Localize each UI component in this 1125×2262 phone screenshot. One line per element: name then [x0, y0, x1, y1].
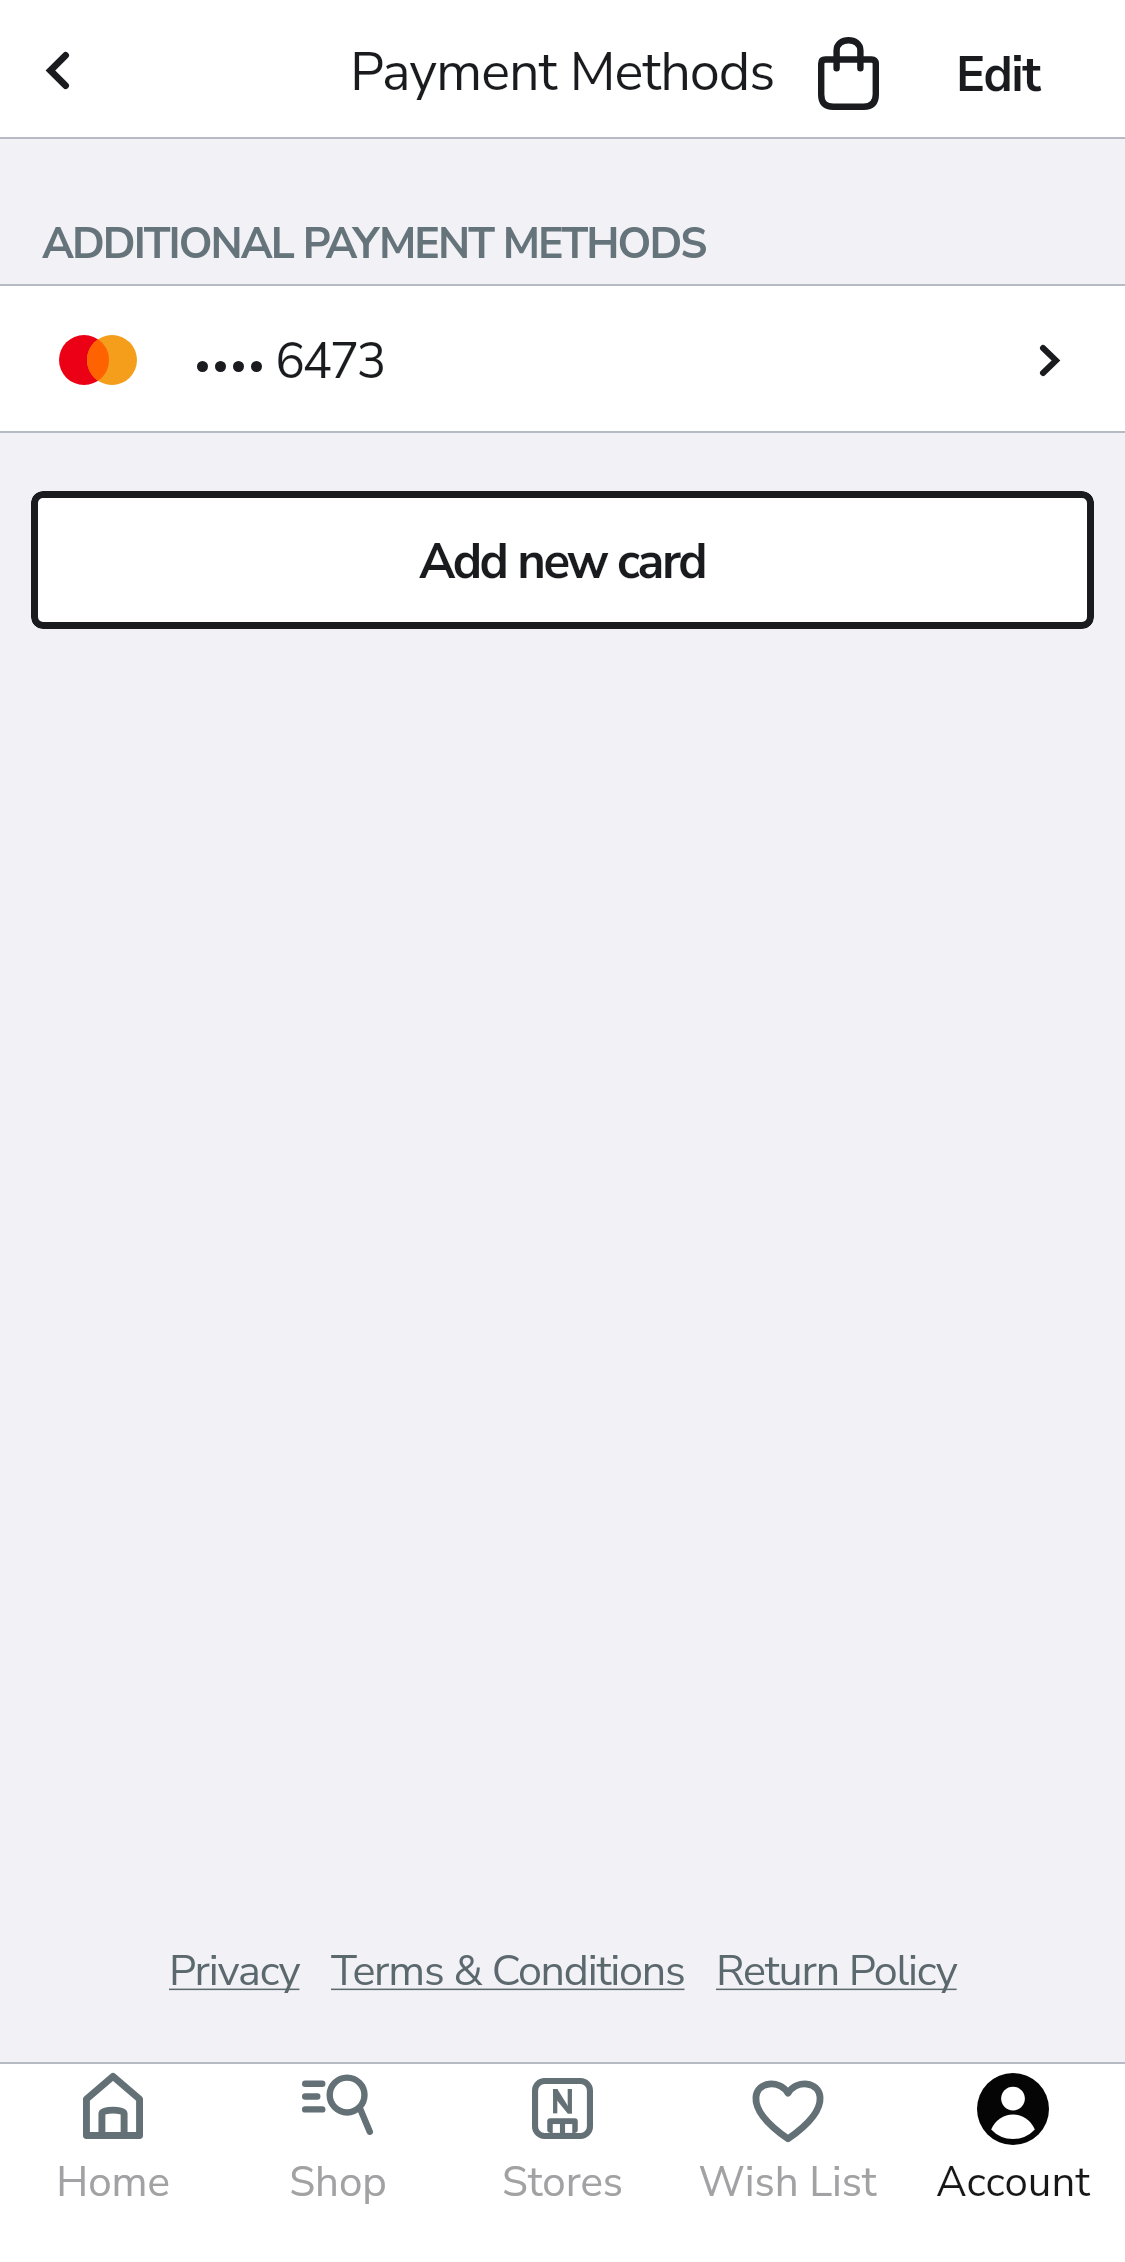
staticText: Home: [56, 2154, 170, 2211]
staticText: Terms & Conditions: [331, 1942, 685, 2001]
button[interactable]: Wish List: [675, 2064, 900, 2262]
button[interactable]: 6473: [0, 286, 1125, 433]
button[interactable]: Shop: [225, 2064, 450, 2262]
staticText: Payment Methods: [350, 35, 775, 109]
button[interactable]: Stores: [450, 2064, 675, 2262]
button[interactable]: Terms & Conditions: [331, 1942, 685, 2001]
staticText: Add new card: [419, 528, 706, 595]
button[interactable]: Privacy: [169, 1942, 300, 2001]
staticText: ADDITIONAL PAYMENT METHODS: [42, 215, 706, 274]
staticText: Wish List: [698, 2154, 877, 2211]
staticText: Return Policy: [716, 1942, 957, 2001]
button[interactable]: Return Policy: [716, 1942, 957, 2001]
staticText: Account: [936, 2154, 1090, 2211]
staticText: Stores: [502, 2154, 623, 2211]
button[interactable]: Edit: [956, 41, 1040, 108]
button[interactable]: Shopping bag: [805, 27, 891, 113]
staticText: Privacy: [169, 1942, 300, 2001]
staticText: 6473: [275, 327, 384, 395]
staticText: Shop: [289, 2154, 387, 2211]
button[interactable]: Home: [0, 2064, 225, 2262]
button[interactable]: Back: [0, 12, 116, 128]
staticText: Edit: [956, 41, 1040, 108]
button[interactable]: Add new card: [31, 491, 1094, 629]
button[interactable]: Account: [900, 2064, 1125, 2262]
